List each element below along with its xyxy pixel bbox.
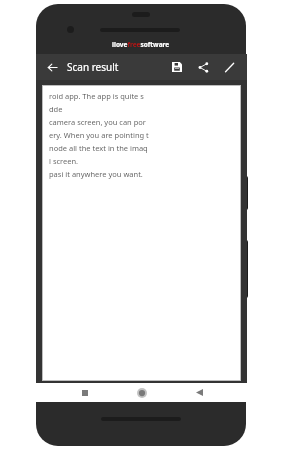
button[interactable]: Save xyxy=(168,58,186,76)
button[interactable]: Back xyxy=(190,383,209,402)
button[interactable]: roid app. The app is quite s xyxy=(42,85,241,381)
staticText: camera screen, you can por xyxy=(49,117,146,127)
staticText: Scan result xyxy=(67,60,119,74)
staticText: node all the text in the imaq xyxy=(49,143,148,153)
staticText: roid app. The app is quite s xyxy=(49,91,144,101)
button[interactable]: Home xyxy=(132,383,151,402)
staticText: pasi it anywhere you want. xyxy=(49,169,143,179)
staticText: dde xyxy=(49,104,63,114)
staticText: l screen. xyxy=(49,156,79,166)
staticText: ilovefreesoftware xyxy=(112,40,170,49)
button[interactable]: Back xyxy=(43,58,61,76)
button[interactable]: Recent apps xyxy=(75,383,94,402)
button[interactable]: Edit xyxy=(220,58,238,76)
staticText: ery. When you are pointing t xyxy=(49,130,149,140)
button[interactable]: Share xyxy=(194,58,212,76)
